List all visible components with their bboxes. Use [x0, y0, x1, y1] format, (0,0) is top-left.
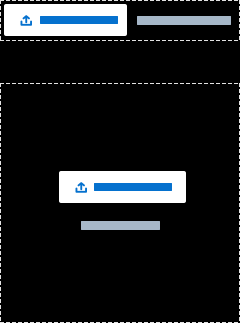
button[interactable]: Upload — [4, 4, 127, 36]
button[interactable]: Upload — [59, 171, 186, 203]
